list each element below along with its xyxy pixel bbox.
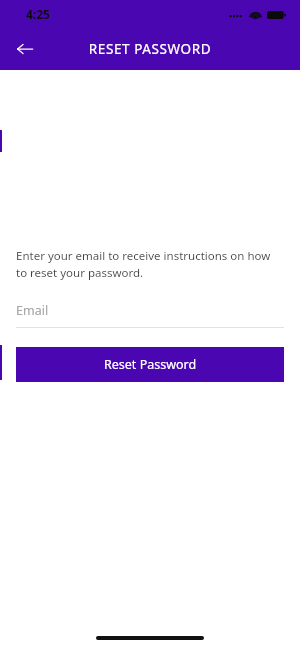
staticText: 4:25 bbox=[26, 6, 50, 22]
button[interactable]: Email bbox=[16, 302, 284, 328]
staticText: Email bbox=[16, 302, 49, 319]
button[interactable]: Back bbox=[11, 35, 39, 63]
staticText: Reset Password bbox=[104, 356, 197, 373]
staticText: RESET PASSWORD bbox=[0, 40, 300, 58]
staticText: Enter your email to receive instructions… bbox=[16, 248, 284, 280]
button[interactable]: Reset Password bbox=[16, 347, 284, 382]
